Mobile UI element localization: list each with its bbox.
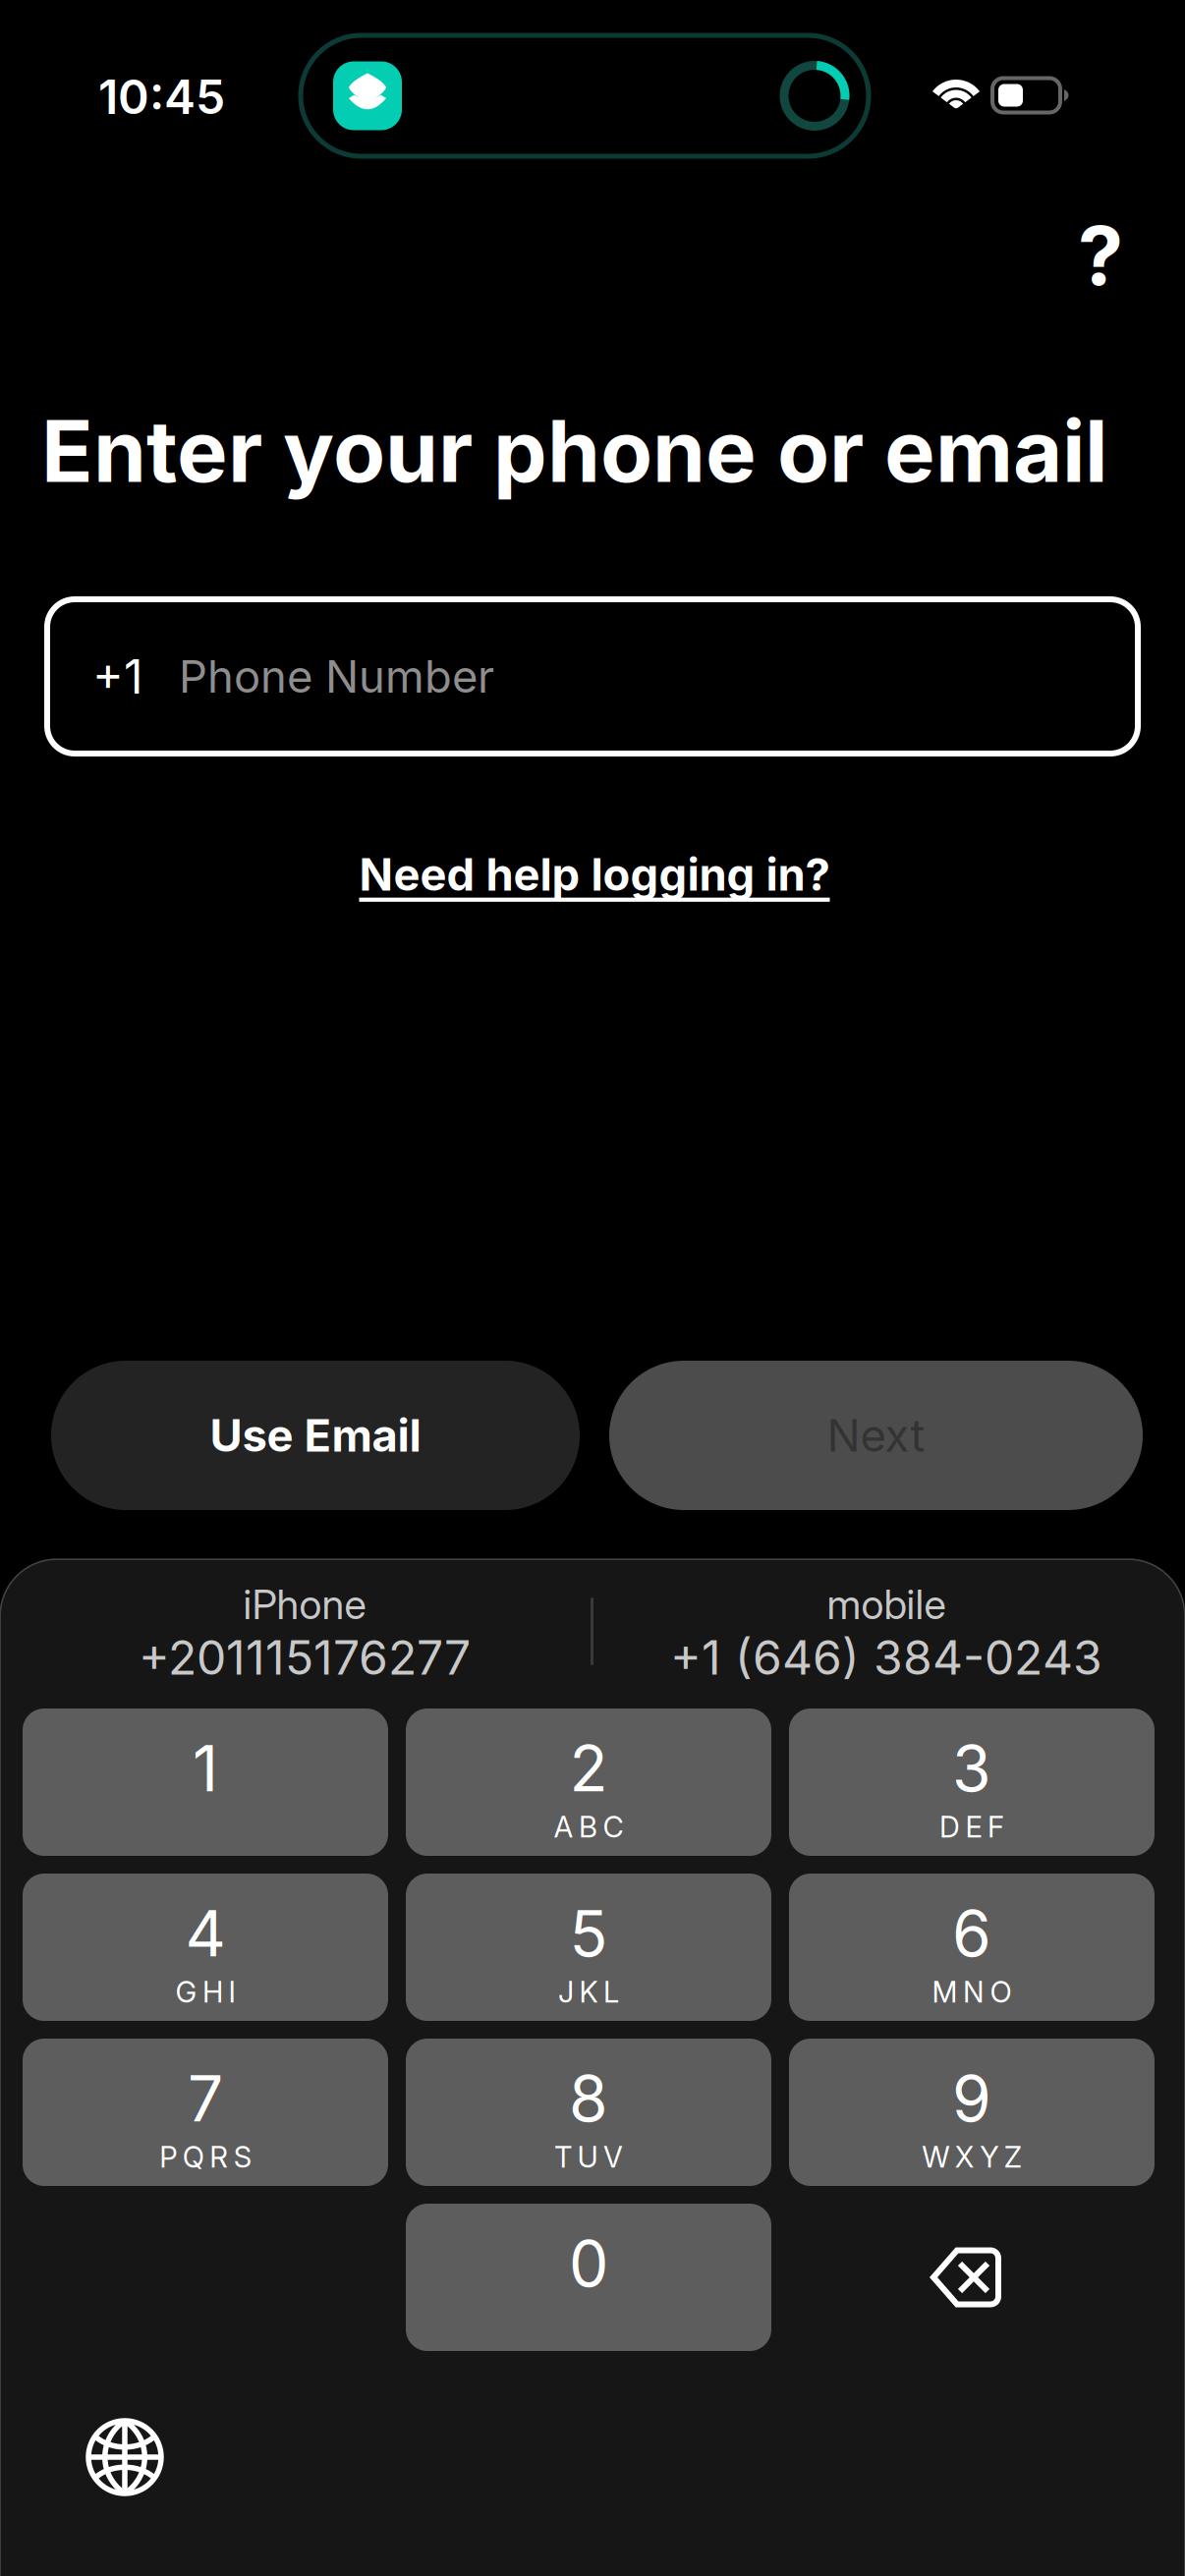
button[interactable]: 4 <box>23 1874 388 2021</box>
button[interactable]: Delete <box>789 2204 1155 2351</box>
staticText: ? <box>1078 206 1123 305</box>
staticText: JKL <box>558 1975 619 2009</box>
staticText: MNO <box>932 1975 1012 2009</box>
staticText: 5 <box>569 1895 608 1971</box>
staticText: 1 <box>193 1730 218 1806</box>
staticText: ABC <box>554 1809 623 1844</box>
staticText: 8 <box>569 2061 608 2137</box>
button[interactable]: 7 <box>23 2039 388 2186</box>
staticText: 10:45 <box>98 68 225 125</box>
staticText: iPhone <box>243 1580 366 1629</box>
button[interactable]: 5 <box>406 1874 771 2021</box>
staticText: Use Email <box>210 1408 421 1462</box>
staticText: 9 <box>952 2061 991 2137</box>
staticText: Phone Number <box>179 650 494 703</box>
button[interactable]: Help <box>1042 196 1159 314</box>
staticText: Enter your phone or email <box>41 399 1107 503</box>
button[interactable]: 2 <box>406 1708 771 1856</box>
staticText: 3 <box>952 1730 991 1806</box>
staticText: Next <box>827 1408 925 1462</box>
staticText: +201115176277 <box>139 1629 471 1686</box>
staticText: +1 <box>92 648 143 705</box>
button[interactable]: Use Email <box>51 1361 580 1510</box>
staticText: 0 <box>569 2226 608 2302</box>
staticText: mobile <box>827 1580 946 1629</box>
button[interactable]: iPhone <box>29 1575 580 1691</box>
staticText: TUV <box>554 2140 623 2174</box>
button[interactable]: mobile <box>611 1575 1161 1691</box>
staticText: +1 (646) 384-0243 <box>670 1629 1102 1686</box>
button[interactable]: 9 <box>789 2039 1155 2186</box>
staticText: WXYZ <box>922 2140 1022 2174</box>
button[interactable]: 3 <box>789 1708 1155 1856</box>
button[interactable]: 1 <box>23 1708 388 1856</box>
staticText: 4 <box>185 1895 226 1971</box>
button[interactable]: Change keyboard <box>85 2417 165 2497</box>
staticText: 6 <box>952 1895 991 1971</box>
staticText: GHI <box>175 1975 235 2009</box>
staticText: 7 <box>188 2061 223 2137</box>
staticText: DEF <box>939 1809 1004 1844</box>
button[interactable]: 8 <box>406 2039 771 2186</box>
button[interactable]: Next <box>609 1361 1143 1510</box>
button[interactable]: 0 <box>406 2204 771 2351</box>
staticText: Need help logging in? <box>359 847 830 901</box>
staticText: 2 <box>569 1730 608 1806</box>
button[interactable]: Need help logging in? <box>334 837 855 912</box>
button[interactable]: +1 <box>47 599 1138 754</box>
button[interactable]: 6 <box>789 1874 1155 2021</box>
staticText: PQRS <box>159 2140 251 2174</box>
